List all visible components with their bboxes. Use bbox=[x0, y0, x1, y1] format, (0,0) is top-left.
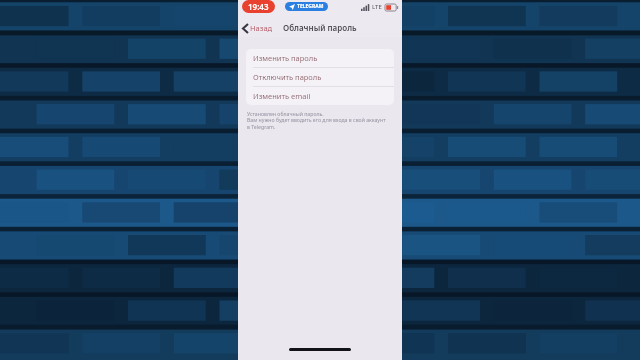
staticText: Назад bbox=[250, 23, 273, 33]
staticText: Облачный пароль bbox=[283, 22, 357, 33]
staticText: TELEGRAM bbox=[297, 3, 324, 10]
staticText: LTE bbox=[372, 3, 382, 11]
staticText: Отключить пароль bbox=[253, 72, 322, 82]
staticText: Установлен облачный пароль. Вам нужно бу… bbox=[247, 110, 386, 131]
staticText: Изменить пароль bbox=[253, 53, 318, 63]
staticText: 19:43 bbox=[248, 1, 269, 12]
button[interactable]: Отключить пароль bbox=[246, 68, 394, 86]
staticText: Изменить email bbox=[253, 91, 311, 101]
button[interactable]: Изменить email bbox=[246, 87, 394, 105]
button[interactable]: Back bbox=[241, 21, 275, 35]
button[interactable]: Изменить пароль bbox=[246, 49, 394, 67]
other: Back bbox=[243, 24, 248, 33]
